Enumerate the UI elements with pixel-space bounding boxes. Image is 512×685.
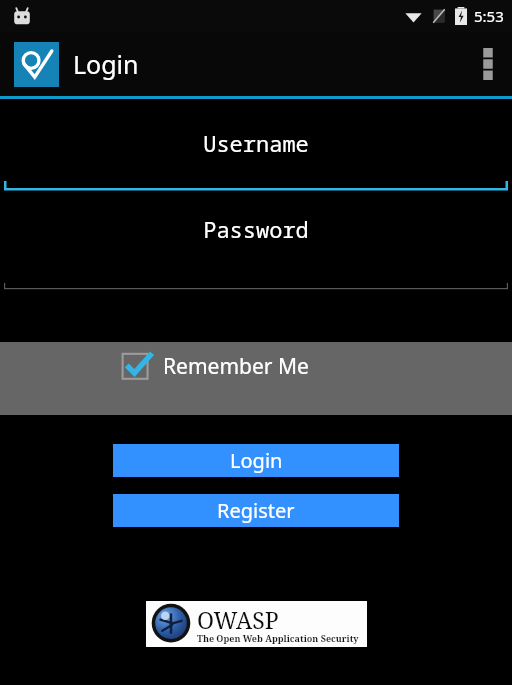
- button[interactable]: Login: [113, 444, 399, 477]
- button[interactable]: Register: [113, 494, 399, 527]
- staticText: Login: [230, 447, 283, 474]
- staticText: Remember Me: [163, 352, 309, 381]
- staticText: Username: [0, 128, 512, 158]
- button[interactable]: Remember Me: [0, 342, 512, 415]
- button[interactable]: More options: [464, 32, 512, 96]
- button[interactable]: Username: [0, 100, 512, 192]
- staticText: OWASP: [197, 604, 279, 635]
- staticText: The Open Web Application Security Projec…: [197, 632, 367, 644]
- staticText: 5:53: [474, 6, 504, 26]
- staticText: Login: [73, 47, 139, 81]
- staticText: Register: [217, 497, 295, 524]
- button[interactable]: Password: [0, 192, 512, 292]
- staticText: Password: [0, 214, 512, 244]
